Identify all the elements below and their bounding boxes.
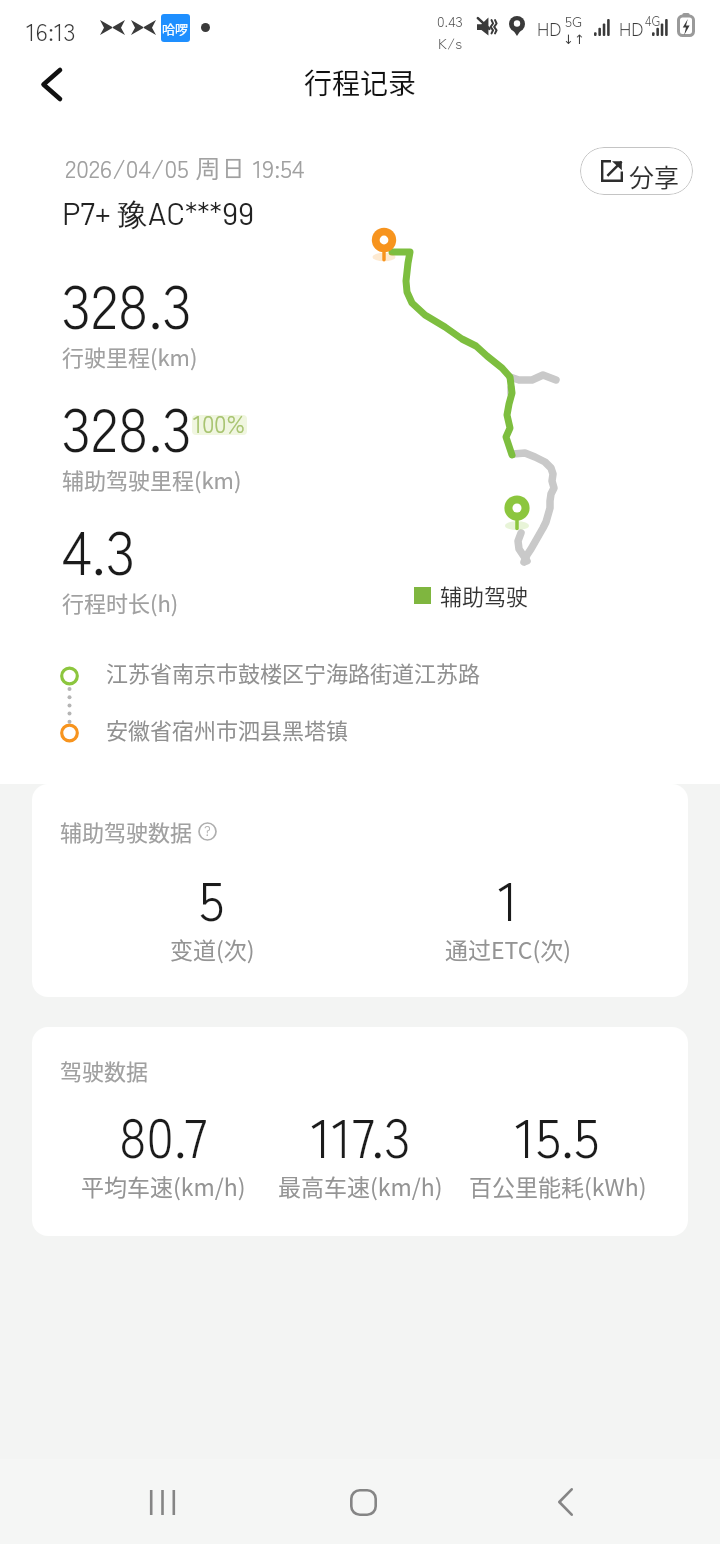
- staticText: 平均车速(km/h): [81, 1169, 246, 1202]
- staticText: 2026/04/05 周日 19:54: [65, 149, 305, 185]
- staticText: 辅助驾驶里程(km): [62, 463, 242, 495]
- staticText: 变道(次): [170, 932, 255, 965]
- staticText: 通过ETC(次): [445, 932, 571, 965]
- staticText: 行程记录: [0, 62, 720, 103]
- staticText: 5G: [565, 10, 583, 32]
- staticText: 5: [199, 858, 225, 936]
- staticText: 0.43: [437, 10, 463, 32]
- staticText: 行驶里程(km): [62, 340, 198, 372]
- staticText: 4G: [645, 11, 661, 30]
- staticText: 16:13: [26, 12, 76, 48]
- button[interactable]: 分享: [580, 147, 693, 195]
- staticText: 百公里能耗(kWh): [469, 1169, 647, 1202]
- staticText: 1: [498, 858, 519, 936]
- staticText: 哈啰: [162, 19, 189, 38]
- staticText: 328.3: [62, 382, 192, 469]
- staticText: 100%: [193, 405, 245, 440]
- staticText: 行程时长(h): [62, 586, 179, 618]
- button[interactable]: Back: [19, 57, 83, 111]
- button[interactable]: Back: [525, 1462, 605, 1542]
- staticText: 安徽省宿州市泗县黑塔镇: [106, 713, 349, 745]
- staticText: 4.3: [62, 505, 136, 592]
- staticText: 15.5: [515, 1095, 600, 1173]
- staticText: 辅助驾驶: [440, 579, 529, 611]
- staticText: K/s: [438, 32, 463, 54]
- staticText: ↓↑: [563, 32, 585, 47]
- button[interactable]: Home: [323, 1462, 403, 1542]
- staticText: HD: [619, 15, 644, 41]
- staticText: HD: [537, 15, 562, 41]
- staticText: ?: [204, 821, 211, 840]
- staticText: 328.3: [62, 259, 192, 346]
- staticText: 80.7: [119, 1095, 207, 1173]
- staticText: 117.3: [311, 1095, 411, 1173]
- staticText: P7+ 豫AC***99: [62, 194, 255, 234]
- staticText: 最高车速(km/h): [278, 1169, 443, 1202]
- staticText: 江苏省南京市鼓楼区宁海路街道江苏路: [106, 656, 481, 688]
- staticText: 分享: [629, 158, 680, 194]
- staticText: 驾驶数据: [60, 1054, 149, 1086]
- staticText: 辅助驾驶数据: [60, 815, 193, 847]
- button[interactable]: Recent apps: [122, 1462, 202, 1542]
